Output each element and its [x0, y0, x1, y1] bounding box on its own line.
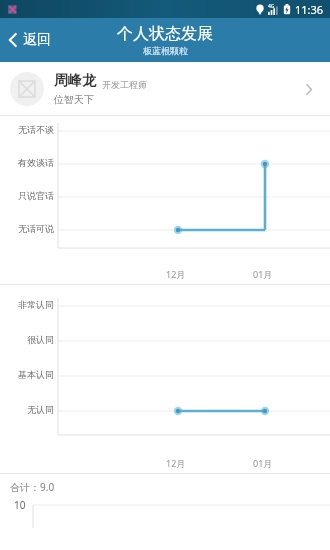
staticText: 11:36 [295, 2, 324, 17]
staticText: 合计：9.0 [10, 480, 55, 494]
staticText: 非常认同 [18, 299, 54, 310]
staticText: 4G [268, 3, 275, 10]
staticText: 周峰龙 [54, 72, 96, 90]
staticText: 无话可说 [18, 223, 54, 234]
staticText: 10 [14, 498, 26, 512]
staticText: 位智天下 [54, 93, 94, 106]
staticText: 无话不谈 [18, 124, 54, 135]
staticText: 返回 [23, 31, 51, 49]
staticText: 板蓝根颗粒 [143, 45, 188, 56]
staticText: 12月 [166, 268, 186, 280]
staticText: 很认同 [27, 334, 54, 345]
other: 查看详情 [298, 78, 320, 100]
staticText: 个人状态发展 [117, 24, 213, 44]
staticText: 只说官话 [18, 190, 54, 201]
staticText: 有效谈话 [18, 157, 54, 168]
button[interactable]: 周峰龙 [0, 62, 330, 115]
staticText: 无认同 [27, 404, 54, 415]
staticText: 01月 [253, 457, 273, 469]
staticText: 开发工程师 [102, 79, 147, 90]
staticText: 01月 [253, 268, 273, 280]
staticText: 基本认同 [18, 369, 54, 380]
button[interactable]: 返回 [0, 25, 61, 55]
staticText: 12月 [166, 457, 186, 469]
